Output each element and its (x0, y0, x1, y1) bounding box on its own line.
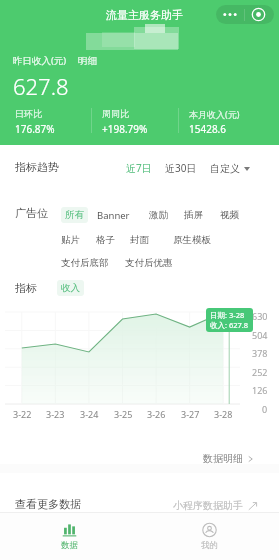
staticText: 我的 (201, 540, 218, 551)
button[interactable]: 激励 (145, 207, 172, 223)
staticText: 252 (252, 366, 268, 378)
staticText: 支付后优惠 (125, 257, 173, 269)
staticText: 原生模板 (173, 234, 211, 246)
staticText: 激励 (149, 209, 168, 221)
button[interactable]: 数据 (0, 513, 139, 560)
button[interactable]: 自定义 (208, 162, 252, 175)
staticText: 日环比 (15, 108, 42, 119)
staticText: 630 (252, 310, 268, 322)
staticText: 支付后底部 (61, 257, 109, 269)
staticText: 封面 (130, 234, 149, 246)
button[interactable]: 贴片 (57, 232, 84, 248)
staticText: 周同比 (102, 108, 129, 119)
staticText: 15428.6 (189, 122, 226, 136)
button[interactable]: 插屏 (180, 207, 207, 223)
staticText: 3-25 (114, 408, 133, 420)
button[interactable]: 小程序数据助手 (171, 497, 260, 514)
staticText: 指标趋势 (15, 160, 59, 174)
button[interactable]: 近30日 (163, 161, 199, 175)
button[interactable]: 数据明细 (200, 449, 256, 468)
staticText: 所有 (65, 209, 84, 221)
button[interactable]: 近7日 (124, 161, 154, 175)
staticText: +198.79% (102, 122, 148, 136)
staticText: 本月收入(元) (189, 108, 240, 120)
staticText: 0 (262, 403, 268, 415)
button[interactable]: 支付后优惠 (121, 255, 177, 271)
staticText: Banner (97, 209, 130, 222)
staticText: 小程序数据助手 (173, 499, 243, 512)
staticText: 视频 (220, 209, 239, 221)
button[interactable]: More options (216, 5, 274, 24)
button[interactable]: 明细 (78, 55, 97, 67)
staticText: 昨日收入(元) (13, 54, 67, 67)
staticText: 查看更多数据 (15, 497, 81, 511)
staticText: 数据明细 (203, 452, 243, 465)
staticText: 收入 (61, 282, 80, 294)
staticText: 3-28 (214, 408, 233, 420)
staticText: 126 (252, 384, 268, 396)
button[interactable]: 支付后底部 (57, 255, 113, 271)
button[interactable]: 封面 (126, 232, 153, 248)
staticText: 3-26 (147, 408, 166, 420)
button[interactable]: 视频 (216, 207, 243, 223)
button[interactable]: 收入 (57, 280, 84, 296)
staticText: 627.8 (13, 71, 69, 101)
staticText: 3-23 (46, 408, 65, 420)
button[interactable]: 所有 (61, 207, 88, 223)
staticText: 504 (252, 329, 268, 341)
staticText: 3-24 (80, 408, 99, 420)
staticText: 指标 (15, 281, 37, 295)
staticText: 流量主服务助手 (106, 8, 183, 22)
staticText: 378 (252, 347, 268, 359)
button[interactable]: 我的 (139, 513, 279, 560)
button[interactable]: 原生模板 (169, 232, 215, 248)
staticText: 广告位 (15, 206, 48, 220)
button[interactable]: Banner (93, 207, 134, 224)
staticText: 3-22 (13, 408, 32, 420)
staticText: 数据 (61, 540, 78, 551)
staticText: 格子 (96, 234, 115, 246)
staticText: 插屏 (184, 209, 203, 221)
button[interactable]: 格子 (92, 232, 119, 248)
staticText: 176.87% (15, 122, 55, 136)
staticText: 日期: 3-28 (210, 310, 245, 320)
staticText: 自定义 (210, 162, 240, 175)
staticText: 3-27 (181, 408, 200, 420)
staticText: 收入: 627.8 (210, 320, 249, 330)
staticText: 贴片 (61, 234, 80, 246)
